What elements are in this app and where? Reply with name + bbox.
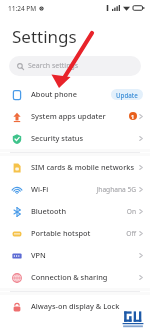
button[interactable]: Security status xyxy=(0,127,150,149)
button[interactable]: System apps updater xyxy=(0,105,150,127)
staticText: System apps updater xyxy=(31,111,129,121)
button[interactable]: SIM cards & mobile networks xyxy=(0,156,150,178)
button[interactable]: VPN xyxy=(0,244,150,266)
staticText: Security status xyxy=(31,133,139,143)
staticText: Always-on display & Lock xyxy=(31,301,143,311)
staticText: VPN xyxy=(31,250,139,260)
staticText: On xyxy=(126,207,136,216)
button[interactable]: Wi-Fi xyxy=(0,178,150,200)
button[interactable]: Connection & sharing xyxy=(0,266,150,288)
button[interactable]: About phone xyxy=(0,83,150,105)
button[interactable]: Update xyxy=(111,89,143,100)
staticText: Update xyxy=(116,91,138,99)
staticText: Bluetooth xyxy=(31,206,126,216)
staticText: Wi-Fi xyxy=(31,184,96,194)
staticText: Jhaghana 5G xyxy=(96,185,136,194)
staticText: Off xyxy=(126,229,136,238)
other: Watermark xyxy=(120,309,146,329)
staticText: 11:24 PM xyxy=(8,4,37,13)
staticText: Portable hotspot xyxy=(31,228,126,238)
staticText: About phone xyxy=(31,89,111,99)
staticText: SIM cards & mobile networks xyxy=(31,162,139,172)
staticText: Connection & sharing xyxy=(31,272,139,282)
staticText: Search settings xyxy=(28,61,79,71)
button[interactable]: Portable hotspot xyxy=(0,222,150,244)
staticText: Settings xyxy=(12,25,77,48)
button[interactable]: Search settings xyxy=(9,56,141,76)
staticText: 1 xyxy=(131,113,135,120)
button[interactable]: Always-on display & Lock xyxy=(0,295,150,317)
button[interactable]: Bluetooth xyxy=(0,200,150,222)
